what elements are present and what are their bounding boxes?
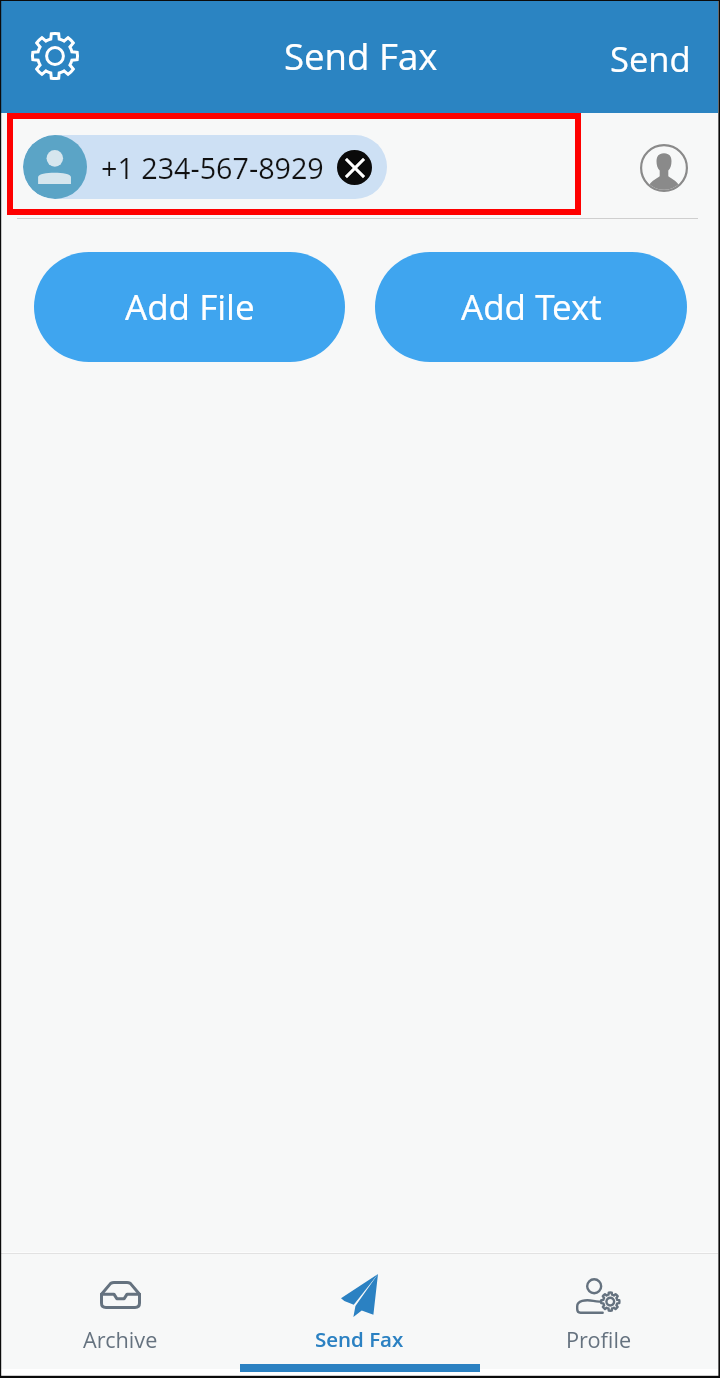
button[interactable]: Settings (21, 22, 89, 90)
staticText: Send Fax (315, 1325, 404, 1353)
staticText: Profile (566, 1325, 632, 1355)
button[interactable]: Profile (479, 1254, 718, 1370)
button[interactable]: Add Text (375, 252, 687, 362)
button[interactable]: Remove recipient (337, 150, 372, 185)
button[interactable]: Send (588, 17, 718, 100)
button[interactable]: Send Fax (240, 1254, 479, 1370)
staticText: +1 234-567-8929 (101, 148, 324, 187)
staticText: Add File (125, 283, 255, 331)
staticText: Archive (83, 1325, 158, 1355)
staticText: Add Text (461, 283, 602, 331)
button[interactable]: Archive (1, 1254, 240, 1370)
staticText: Send Fax (284, 31, 438, 81)
button[interactable]: +1 234-567-8929 (23, 135, 387, 199)
button[interactable]: Add File (34, 252, 345, 362)
button[interactable]: Choose contact (636, 140, 692, 196)
staticText: Send (610, 35, 691, 82)
